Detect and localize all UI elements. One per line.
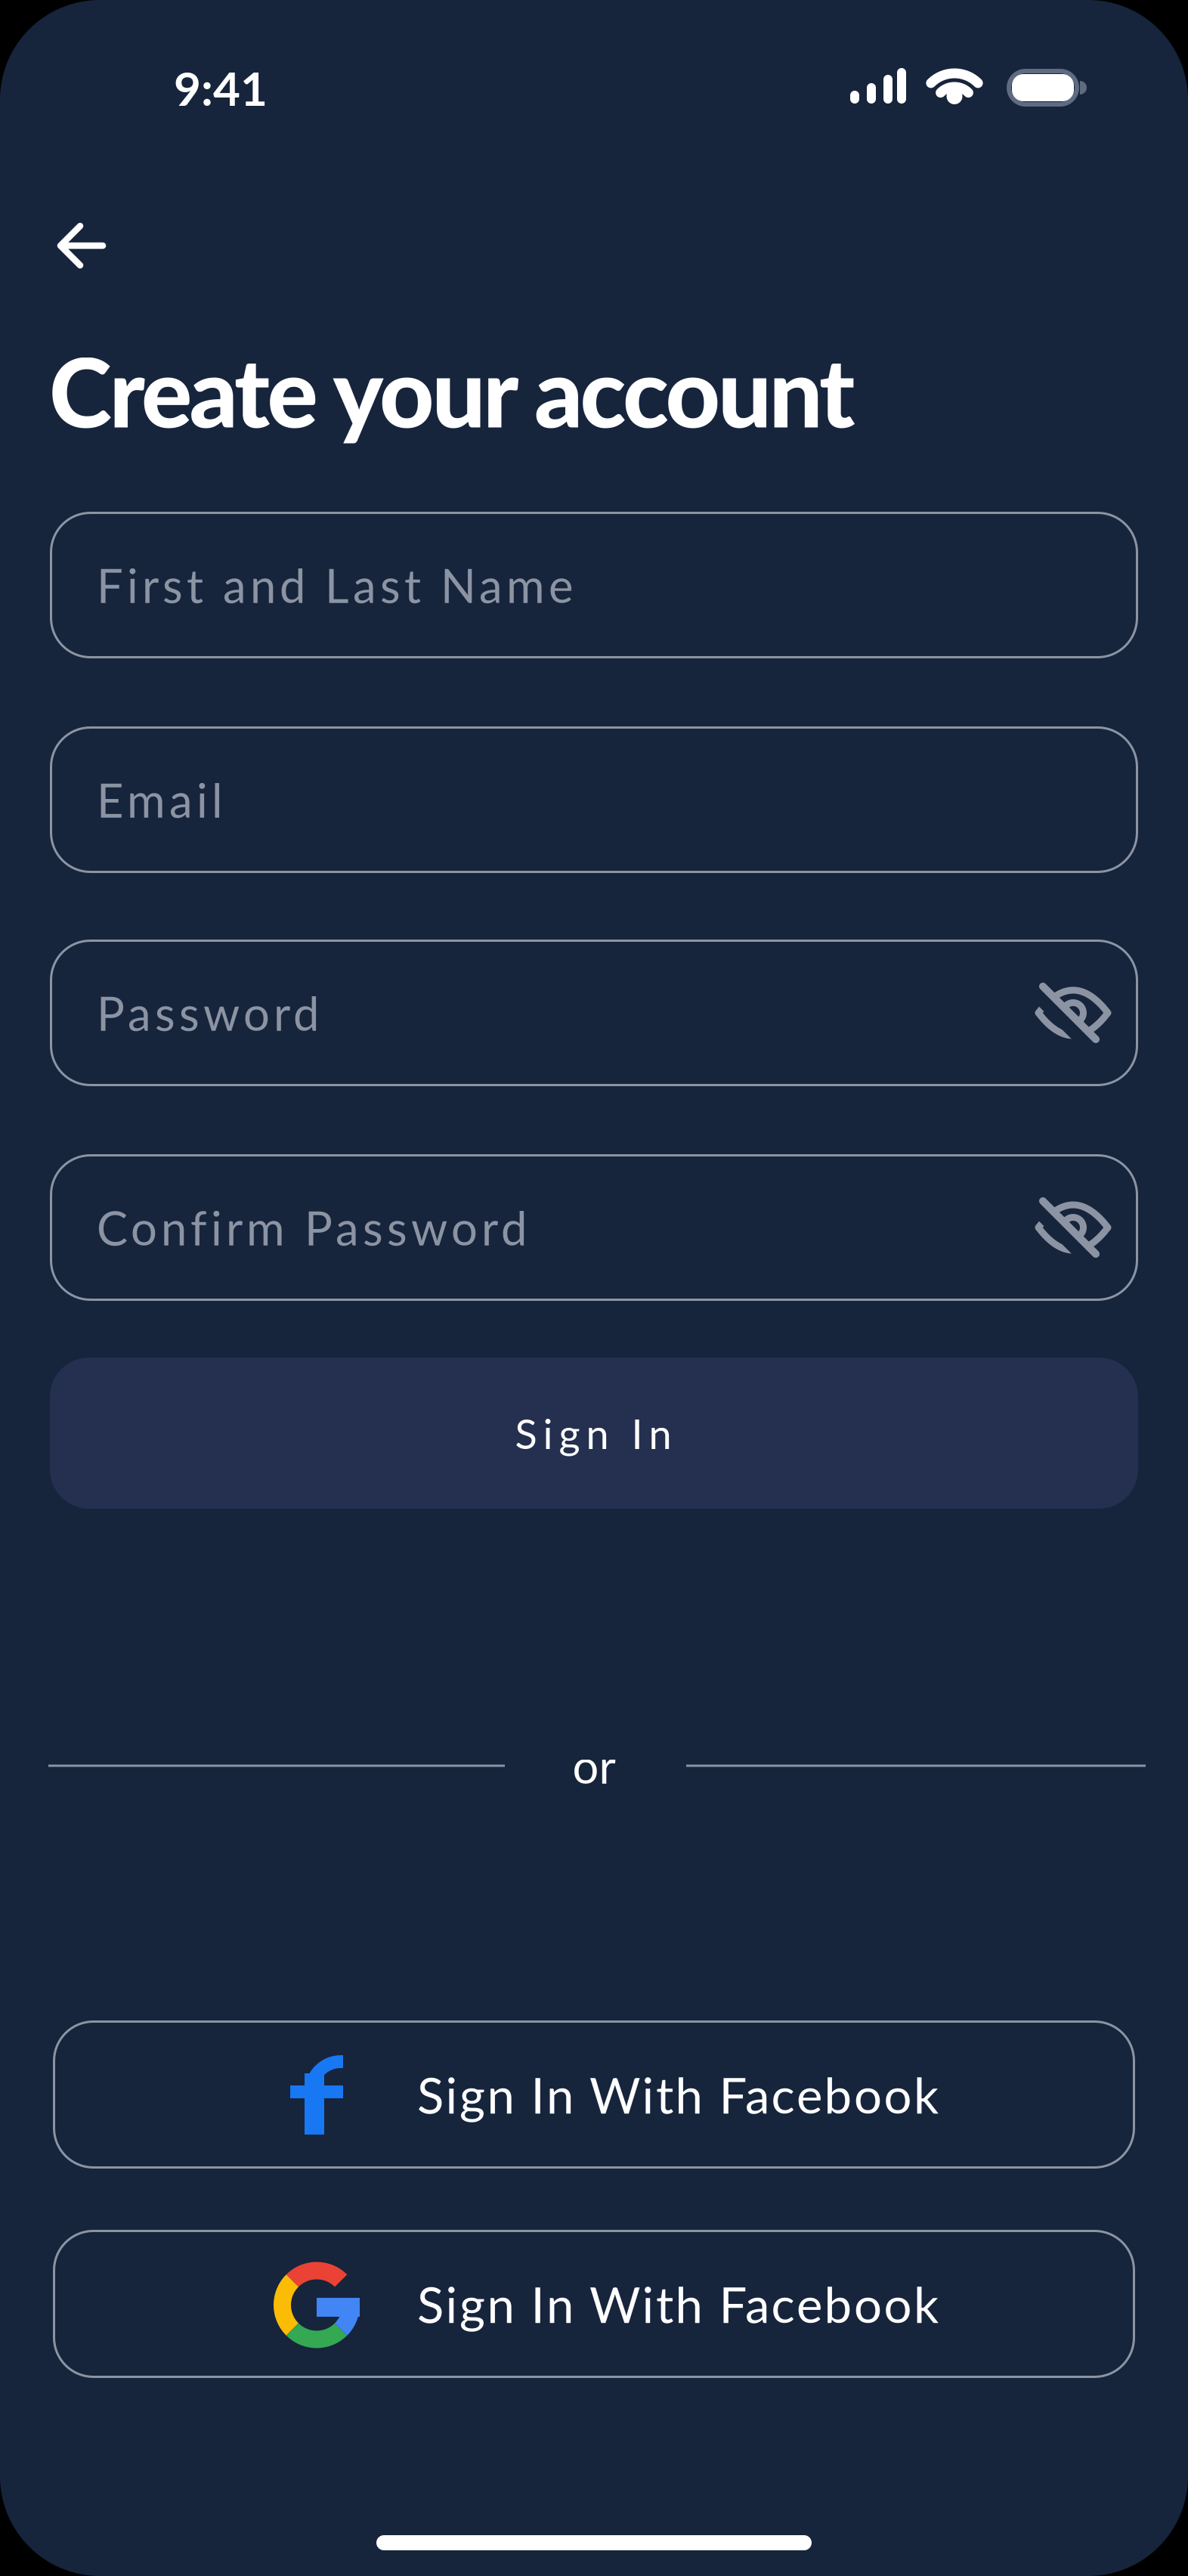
staticText: First and Last Name [97, 557, 589, 613]
staticText: or [572, 1738, 616, 1794]
staticText: Sign In [515, 1409, 688, 1458]
button[interactable] [57, 225, 106, 266]
button[interactable]: Sign In [50, 1358, 1138, 1509]
staticText: Sign In With Facebook [417, 2065, 953, 2124]
staticText: Password [97, 985, 335, 1041]
button[interactable] [1032, 1186, 1115, 1269]
button[interactable]: Sign In With Facebook [53, 2020, 1135, 2169]
button[interactable]: Sign In With Facebook [53, 2230, 1135, 2378]
staticText: Email [97, 772, 239, 828]
button[interactable] [1032, 971, 1115, 1054]
staticText: Create your account [49, 334, 855, 448]
staticText: Confirm Password [97, 1200, 543, 1255]
staticText: 9:41 [174, 60, 268, 116]
staticText: Sign In With Facebook [417, 2274, 953, 2333]
